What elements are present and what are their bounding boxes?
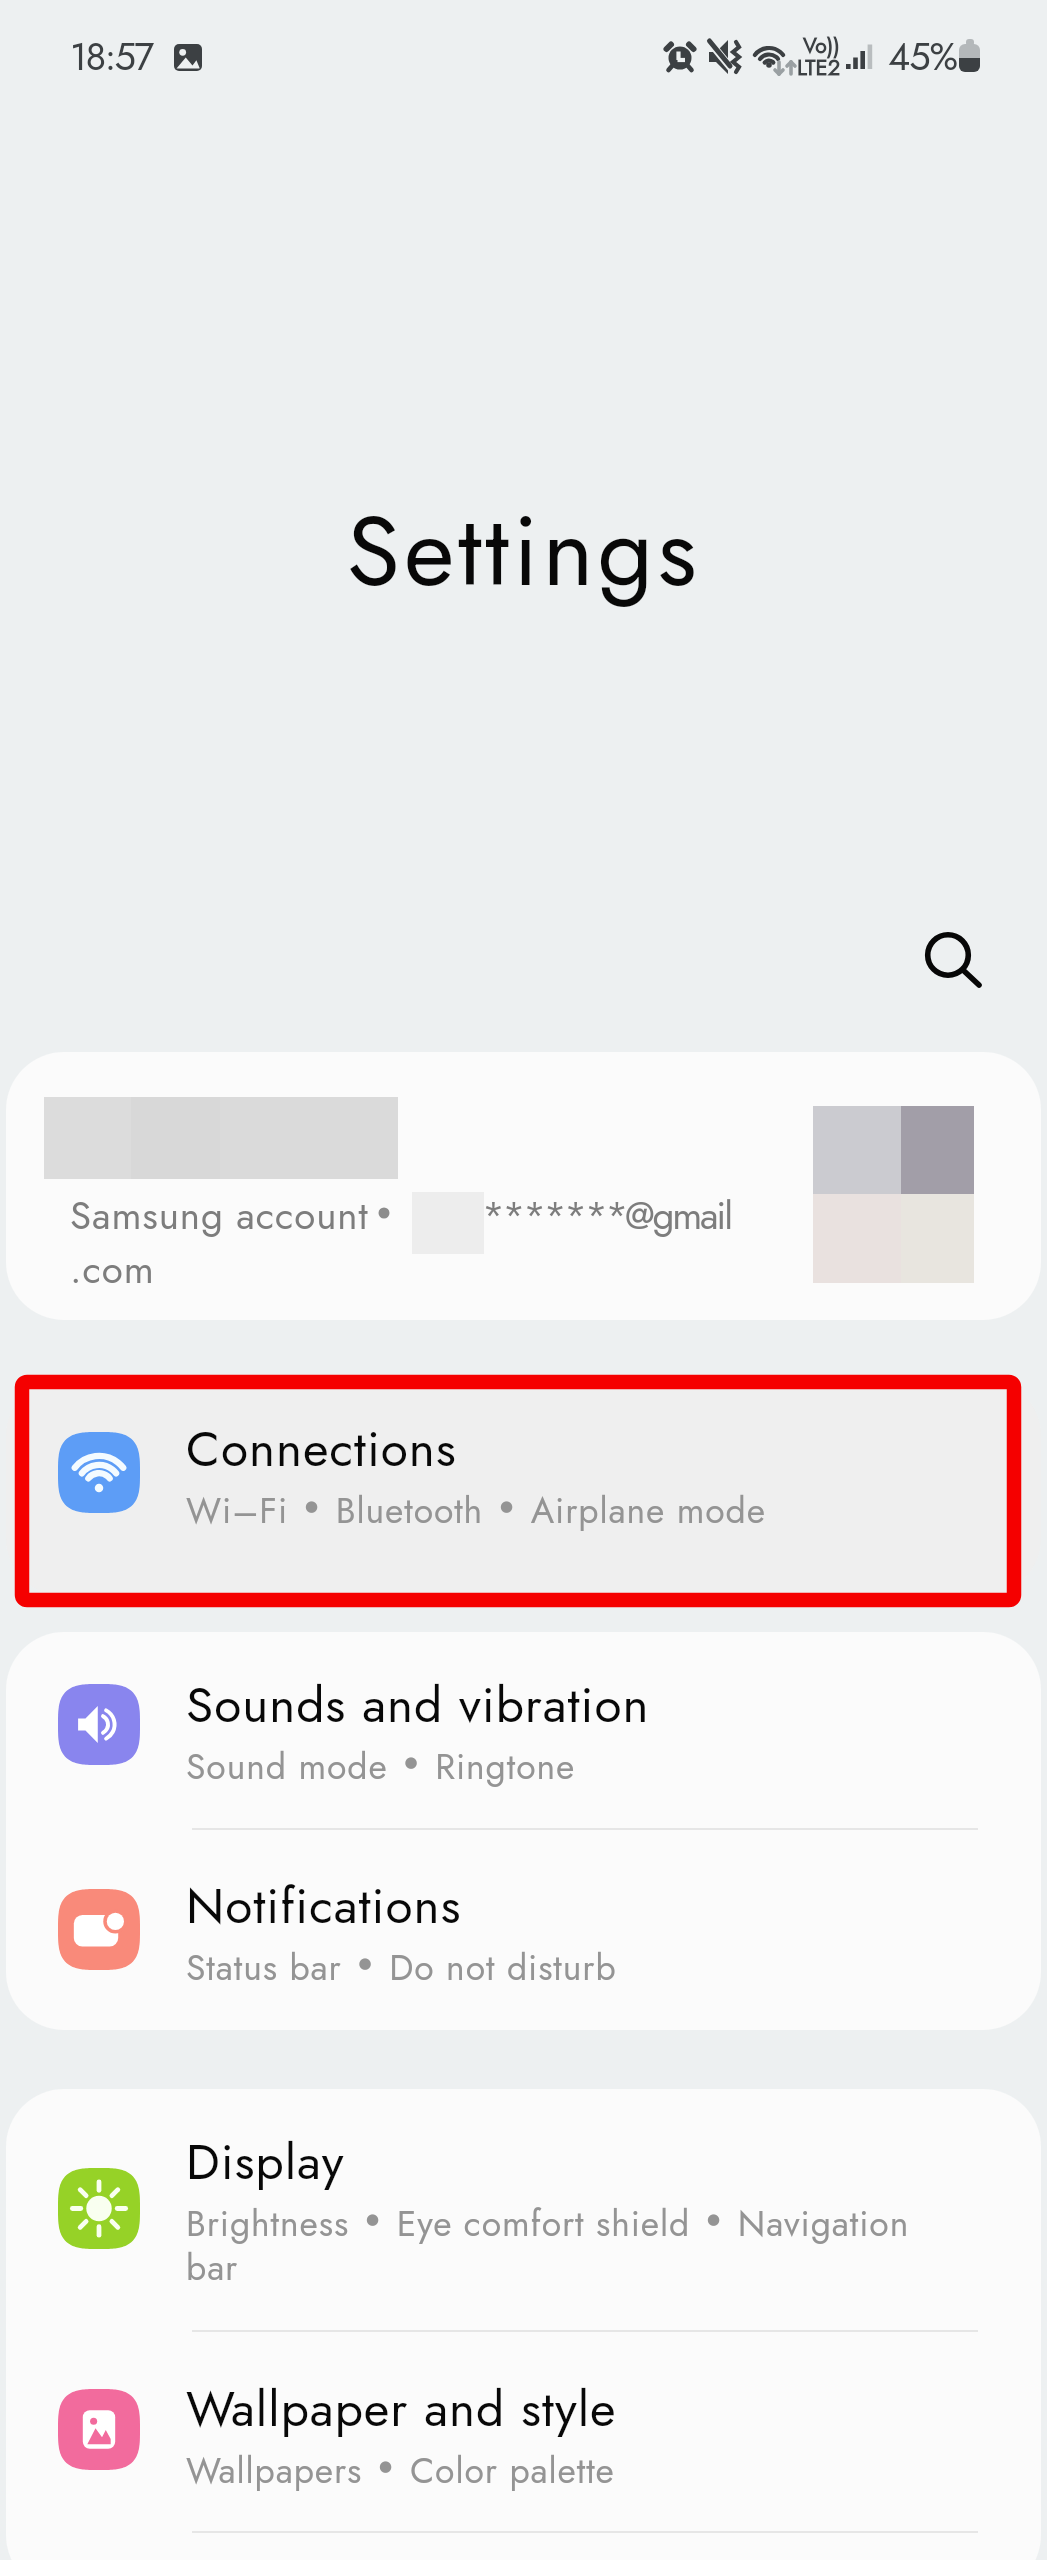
staticText: 18:57	[70, 29, 153, 84]
staticText: Connections	[186, 1413, 457, 1485]
staticText: *******@gmail	[482, 1188, 731, 1244]
staticText: Status bar ● Do not disturb	[186, 1942, 617, 1993]
button[interactable]: Sounds and vibration	[6, 1632, 1041, 1828]
staticText: LTE2	[797, 51, 841, 83]
button[interactable]: Notifications	[6, 1830, 1041, 2030]
button[interactable]: Display	[6, 2089, 1041, 2330]
staticText: Vo))	[803, 31, 840, 61]
button[interactable]: Search	[890, 897, 1006, 1013]
staticText: Wi–Fi ● Bluetooth ● Airplane mode	[186, 1485, 766, 1536]
button[interactable]: Wallpaper and style	[6, 2332, 1041, 2531]
staticText: .com	[70, 1242, 155, 1298]
staticText: 45%	[888, 29, 958, 84]
staticText: Wallpaper and style	[186, 2373, 617, 2445]
staticText: Sound mode ● Ringtone	[186, 1741, 576, 1792]
staticText: Notifications	[186, 1870, 462, 1942]
staticText: Samsung account	[70, 1188, 369, 1244]
staticText: Brightness ● Eye comfort shield ● Naviga…	[186, 2198, 961, 2293]
button[interactable]: Connections	[6, 1378, 1041, 1596]
staticText: Wallpapers ● Color palette	[186, 2445, 615, 2496]
staticText: Sounds and vibration	[186, 1669, 650, 1741]
button[interactable]: Samsung account	[6, 1052, 1041, 1320]
staticText: Settings	[0, 481, 1047, 622]
staticText: Display	[186, 2126, 345, 2198]
